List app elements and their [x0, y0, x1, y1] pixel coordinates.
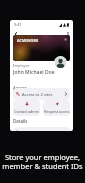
staticText: Store your employee, member & student ID…	[2, 152, 83, 172]
staticText: John Michael Doe	[13, 69, 55, 76]
staticText: Access to 2 sites	[22, 92, 53, 97]
staticText: Employee	[13, 63, 30, 68]
staticText: Details	[13, 118, 28, 124]
staticText: Company	[16, 129, 32, 131]
button[interactable]: Access to 2 sites	[13, 88, 70, 100]
staticText: ACMEWORK	[17, 38, 39, 43]
button[interactable]: Company	[13, 127, 70, 131]
button[interactable]: Contact admin	[13, 100, 40, 116]
button[interactable]: More options	[63, 29, 72, 38]
staticText: Contact admin	[14, 109, 39, 114]
staticText: Request access	[44, 109, 70, 114]
button[interactable]: Back	[11, 29, 20, 38]
button[interactable]: Request access	[43, 100, 70, 116]
button[interactable]: ACMEWORK	[13, 35, 70, 61]
staticText: 9:41	[14, 22, 22, 27]
staticText: Access	[13, 85, 27, 91]
